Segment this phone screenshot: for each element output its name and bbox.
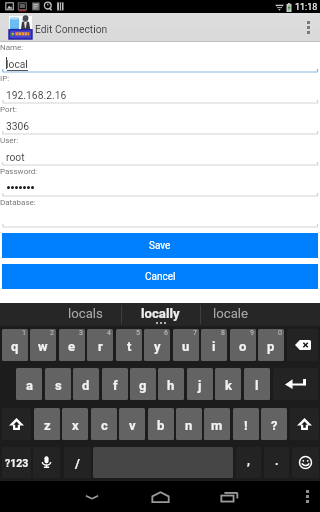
staticText: ? — [271, 418, 278, 433]
button[interactable]: Menu — [294, 481, 320, 512]
button[interactable]: r — [87, 329, 113, 361]
staticText: s — [55, 378, 62, 393]
staticText: Port: — [0, 105, 18, 114]
button[interactable]: x — [62, 408, 88, 440]
staticText: locals — [68, 306, 103, 321]
staticText: u — [182, 339, 190, 354]
button[interactable]: u — [173, 329, 199, 361]
staticText: . — [275, 454, 279, 468]
staticText: x — [72, 418, 79, 433]
staticText: p — [267, 339, 275, 354]
button[interactable]: More options — [296, 13, 320, 42]
staticText: Save — [149, 240, 171, 252]
button[interactable]: Hide keyboard — [72, 481, 112, 512]
button[interactable]: l — [244, 368, 270, 400]
button[interactable]: g — [130, 368, 156, 400]
staticText: d — [82, 378, 90, 393]
staticText: z — [44, 418, 51, 433]
button[interactable]: Emoji — [292, 447, 319, 478]
button[interactable]: n — [176, 408, 202, 440]
button[interactable]: locals — [50, 303, 120, 326]
button[interactable]: h — [158, 368, 184, 400]
button[interactable]: q — [2, 329, 28, 361]
button[interactable]: Home — [140, 481, 180, 512]
staticText: b — [157, 418, 165, 433]
staticText: q — [11, 339, 19, 354]
staticText: o — [239, 339, 247, 354]
button[interactable]: Enter — [273, 368, 318, 400]
button[interactable]: k — [215, 368, 241, 400]
button[interactable]: w — [30, 329, 56, 361]
staticText: , — [247, 454, 250, 468]
staticText: 192.168.2.16 — [6, 89, 67, 101]
button[interactable]: z — [34, 408, 60, 440]
staticText: g — [139, 378, 147, 393]
button[interactable]: s — [45, 368, 71, 400]
button[interactable]: Delete — [287, 329, 318, 361]
staticText: Database: — [0, 198, 36, 207]
button[interactable]: Recent apps — [209, 481, 249, 512]
staticText: 1 — [22, 329, 26, 337]
button[interactable]: ! — [233, 408, 259, 440]
button[interactable]: o — [230, 329, 256, 361]
staticText: a — [26, 378, 33, 393]
button[interactable]: Shift — [290, 408, 319, 440]
button[interactable]: locally — [121, 303, 200, 326]
button[interactable]: v — [119, 408, 145, 440]
staticText: 5 — [136, 329, 140, 337]
staticText: Password: — [0, 167, 38, 176]
button[interactable]: c — [91, 408, 117, 440]
button[interactable]: e — [59, 329, 85, 361]
staticText: root — [6, 151, 25, 163]
button[interactable]: Save — [2, 233, 318, 258]
staticText: 11:18 — [295, 2, 318, 13]
staticText: l — [255, 378, 259, 393]
staticText: Name: — [0, 43, 24, 52]
staticText: h — [167, 378, 175, 393]
button[interactable]: Period — [264, 447, 289, 478]
button[interactable]: Comma — [236, 447, 261, 478]
staticText: e — [68, 339, 76, 354]
button[interactable]: Shift — [2, 408, 31, 440]
staticText: ! — [244, 418, 248, 433]
staticText: 8 — [221, 329, 225, 337]
staticText: / — [75, 456, 80, 471]
button[interactable]: locale — [201, 303, 261, 326]
button[interactable]: ? — [261, 408, 287, 440]
staticText: m — [211, 418, 223, 433]
staticText: r — [98, 339, 103, 354]
button[interactable]: t — [116, 329, 142, 361]
button[interactable]: Slash — [64, 447, 91, 478]
staticText: 3 — [79, 329, 83, 337]
staticText: j — [198, 378, 202, 393]
staticText: w — [38, 339, 48, 354]
staticText: IP: — [0, 74, 10, 83]
button[interactable]: b — [148, 408, 174, 440]
staticText: User: — [0, 136, 19, 145]
staticText: ?123 — [5, 457, 29, 469]
staticText: Cancel — [145, 271, 176, 283]
button[interactable]: p — [258, 329, 284, 361]
staticText: f — [113, 378, 118, 393]
button[interactable]: d — [73, 368, 99, 400]
staticText: 0 — [278, 329, 282, 337]
button[interactable]: m — [204, 408, 230, 440]
staticText: y — [154, 339, 161, 354]
staticText: 4 — [107, 329, 111, 337]
button[interactable]: Symbols — [2, 447, 31, 478]
staticText: local — [6, 58, 28, 70]
button[interactable]: y — [144, 329, 170, 361]
staticText: v — [129, 418, 136, 433]
staticText: i — [212, 339, 216, 354]
button[interactable]: f — [102, 368, 128, 400]
staticText: 9 — [250, 329, 254, 337]
button[interactable]: j — [187, 368, 213, 400]
staticText: t — [127, 339, 132, 354]
staticText: n — [185, 418, 193, 433]
button[interactable]: a — [16, 368, 42, 400]
button[interactable]: Cancel — [2, 264, 318, 289]
button[interactable]: Voice input — [33, 447, 60, 478]
button[interactable]: i — [201, 329, 227, 361]
staticText: 6 — [164, 329, 168, 337]
